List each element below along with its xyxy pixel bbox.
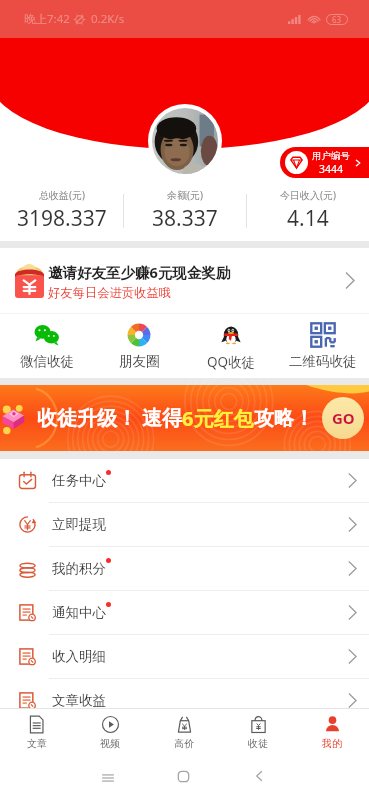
button[interactable]: 文章 xyxy=(0,709,73,756)
staticText: 收徒升级！ xyxy=(37,406,137,431)
staticText: 好友每日会进贡收益哦 xyxy=(48,285,171,300)
staticText: 我的积分 xyxy=(52,560,106,577)
button[interactable]: Recents xyxy=(101,771,115,785)
staticText: 文章 xyxy=(27,737,47,750)
staticText: 我的 xyxy=(322,737,342,750)
staticText: 高价 xyxy=(174,737,194,750)
button[interactable]: 收徒升级！ xyxy=(0,385,369,451)
staticText: 63 xyxy=(332,14,342,25)
staticText: 0.2K/s xyxy=(91,11,125,27)
staticText: 邀请好友至少赚6元现金奖励 xyxy=(48,262,231,282)
staticText: 立即提现 xyxy=(52,516,106,533)
staticText: QQ收徒 xyxy=(207,353,256,371)
staticText: 3198.337 xyxy=(17,204,107,233)
button[interactable]: 收入明细 xyxy=(0,635,369,679)
button[interactable]: Home xyxy=(177,770,190,783)
button[interactable]: 今日收入(元) xyxy=(247,180,369,241)
staticText: 6元红包 xyxy=(182,405,254,432)
staticText: 视频 xyxy=(100,737,120,750)
button[interactable]: 我的 xyxy=(295,709,369,756)
button[interactable]: 朋友圈 xyxy=(93,314,185,378)
button[interactable]: 任务中心 xyxy=(0,459,369,503)
staticText: 晚上7:42 xyxy=(24,11,70,27)
button[interactable]: 二维码收徒 xyxy=(277,314,369,378)
staticText: 4.14 xyxy=(287,204,329,233)
button[interactable]: 文章收益 xyxy=(0,679,369,723)
button[interactable]: 我的积分 xyxy=(0,547,369,591)
button[interactable]: 邀请好友至少赚6元现金奖励 xyxy=(0,248,369,313)
staticText: 二维码收徒 xyxy=(289,353,357,370)
staticText: 总收益(元) xyxy=(39,188,85,202)
staticText: 任务中心 xyxy=(52,472,106,489)
staticText: 通知中心 xyxy=(52,604,106,621)
staticText: 收入明细 xyxy=(52,648,106,665)
button[interactable]: 通知中心 xyxy=(0,591,369,635)
button[interactable]: 高价 xyxy=(147,709,221,756)
staticText: 朋友圈 xyxy=(119,353,160,370)
staticText: 今日收入(元) xyxy=(280,188,336,202)
staticText: 微信收徒 xyxy=(20,353,74,370)
staticText: 攻略！ xyxy=(254,406,314,431)
button[interactable]: 微信收徒 xyxy=(0,314,93,378)
staticText: 文章收益 xyxy=(52,692,106,709)
button[interactable]: 余额(元) xyxy=(124,180,246,241)
button[interactable]: 用户编号 xyxy=(280,147,369,178)
staticText: 速得 xyxy=(142,406,182,431)
staticText: 余额(元) xyxy=(167,188,203,202)
staticText: GO xyxy=(332,408,355,428)
button[interactable]: 收徒 xyxy=(221,709,295,756)
staticText: 3444 xyxy=(319,162,344,176)
button[interactable]: 视频 xyxy=(73,709,147,756)
button[interactable]: 总收益(元) xyxy=(0,180,123,241)
staticText: 用户编号 xyxy=(312,150,350,162)
staticText: 38.337 xyxy=(152,204,218,233)
staticText: 收徒 xyxy=(248,737,268,750)
button[interactable]: QQ收徒 xyxy=(185,314,277,378)
button[interactable]: Back xyxy=(252,769,266,783)
button[interactable]: 立即提现 xyxy=(0,503,369,547)
